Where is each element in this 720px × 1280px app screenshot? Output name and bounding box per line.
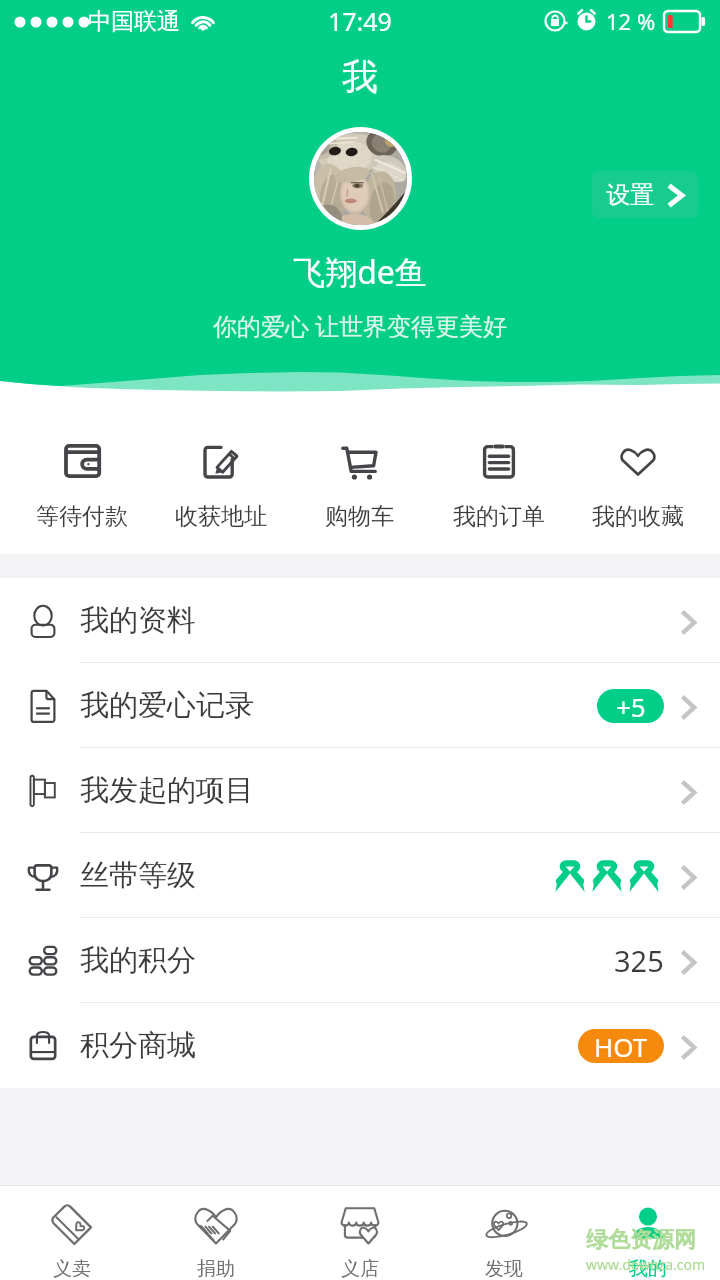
button[interactable]: 我的积分 [0,918,720,1003]
staticText: 我 [0,54,720,99]
staticText: 飞翔de鱼 [0,250,720,294]
staticText: 我的订单 [453,502,545,531]
button[interactable]: 我的订单 [429,392,568,554]
button[interactable]: 义卖 [0,1185,144,1280]
staticText: 我的 [629,1257,667,1280]
staticText: 我发起的项目 [80,772,254,809]
staticText: 义卖 [53,1257,91,1280]
button[interactable]: 我的爱心记录 [0,663,720,748]
staticText: 325 [614,941,664,980]
button[interactable]: 积分商城 [0,1003,720,1088]
button[interactable]: 我的收藏 [568,392,707,554]
button[interactable]: 捐助 [144,1185,288,1280]
staticText: 中国联通 [88,7,180,36]
staticText: 我的积分 [80,942,196,979]
staticText: 绿色资源网 [586,1226,696,1254]
staticText: 等待付款 [36,502,128,531]
button[interactable]: 发现 [432,1185,576,1280]
staticText: 收获地址 [175,502,267,531]
button[interactable]: 义店 [288,1185,432,1280]
staticText: 发现 [485,1257,523,1280]
button[interactable]: 收获地址 [151,392,290,554]
button[interactable]: 我的资料 [0,578,720,663]
staticText: 17:49 [328,4,392,38]
button[interactable]: 我发起的项目 [0,748,720,833]
staticText: +5 [616,689,646,723]
staticText: 丝带等级 [80,857,196,894]
button[interactable]: 购物车 [290,392,429,554]
staticText: HOT [594,1029,648,1063]
staticText: www.downza.com [586,1255,706,1274]
staticText: 12 % [606,6,656,36]
staticText: 捐助 [197,1257,235,1280]
staticText: 我的资料 [80,602,196,639]
staticText: 积分商城 [80,1027,196,1064]
staticText: 我的收藏 [592,502,684,531]
staticText: 你的爱心 让世界变得更美好 [0,309,720,342]
staticText: 设置 [606,180,654,210]
button[interactable]: 我的 [576,1185,720,1280]
staticText: 购物车 [325,502,394,531]
button[interactable]: 设置 [592,171,698,218]
staticText: 我的爱心记录 [80,687,254,724]
button[interactable]: 丝带等级 [0,833,720,918]
button[interactable]: 等待付款 [13,392,151,554]
staticText: 义店 [341,1257,379,1280]
